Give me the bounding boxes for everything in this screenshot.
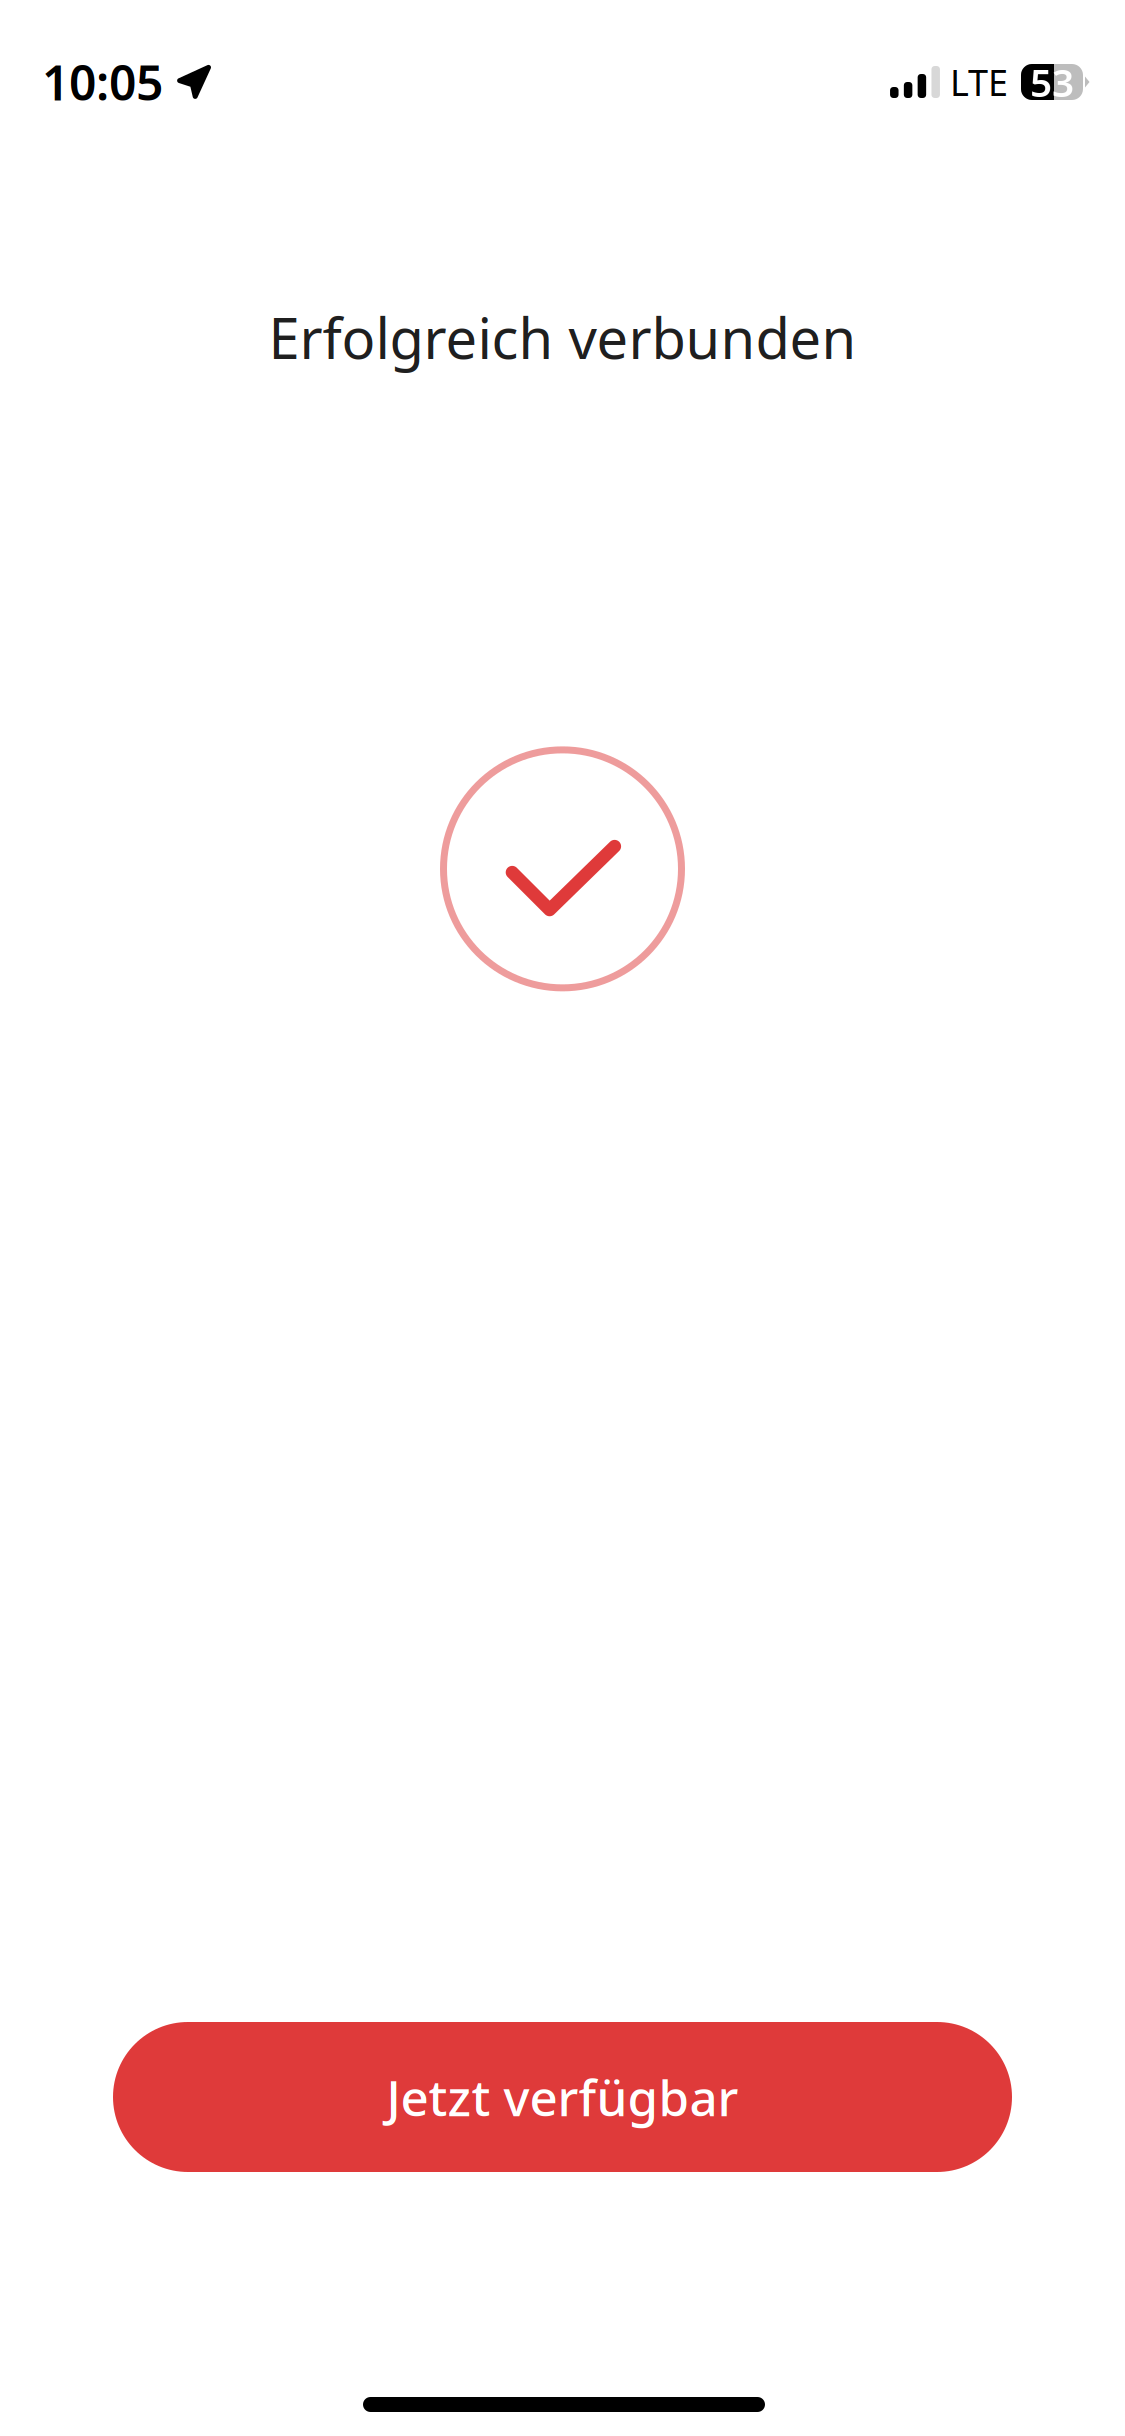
- staticText: LTE: [950, 58, 1008, 106]
- button[interactable]: Jetzt verfügbar: [113, 2022, 1012, 2172]
- staticText: Erfolgreich verbunden: [268, 300, 856, 374]
- staticText: 53: [1030, 56, 1074, 108]
- staticText: Jetzt verfügbar: [386, 2064, 738, 2130]
- staticText: 10:05: [42, 50, 163, 114]
